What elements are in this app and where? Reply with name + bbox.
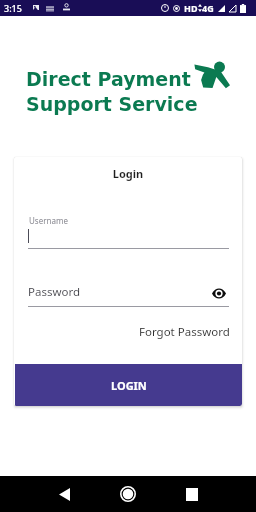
button[interactable]: LOGIN: [15, 364, 242, 406]
staticText: 3:15: [4, 2, 22, 14]
staticText: 4G: [202, 2, 214, 14]
staticText: Password: [28, 284, 81, 300]
staticText: Direct Payment: [26, 68, 191, 90]
staticText: Support Service: [26, 93, 198, 115]
button[interactable]: Forgot Password: [139, 324, 230, 340]
staticText: Login: [14, 166, 242, 181]
staticText: Username: [29, 215, 68, 226]
button[interactable]: Back: [43, 476, 85, 512]
staticText: LOGIN: [111, 378, 147, 393]
button[interactable]: Recent apps: [171, 476, 213, 512]
button[interactable]: Show password: [210, 285, 227, 302]
button[interactable]: Home: [107, 476, 149, 512]
staticText: HD: [184, 2, 198, 14]
